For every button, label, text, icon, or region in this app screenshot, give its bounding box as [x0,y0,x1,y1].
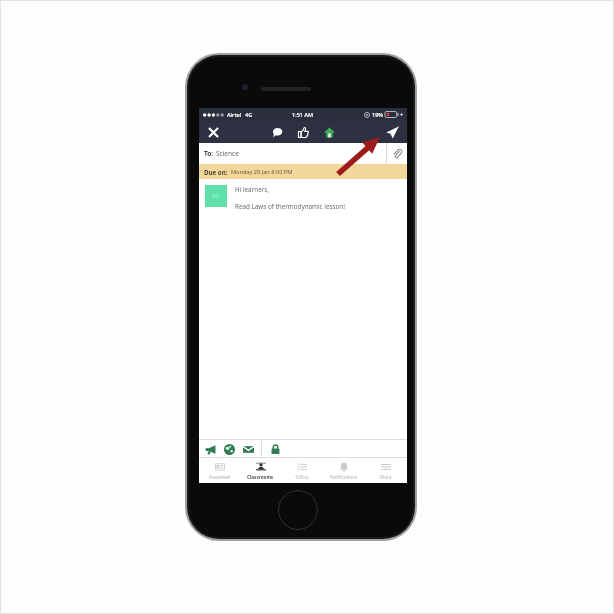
button[interactable]: Newsfeed [199,458,240,483]
staticText: Classrooms [247,474,274,480]
button[interactable]: Notifications [323,458,365,483]
button[interactable]: Send [383,123,401,141]
button[interactable]: Message [240,441,256,457]
staticText: Due on: [204,168,228,176]
staticText: Science [216,149,239,158]
button[interactable]: Close [205,124,221,140]
button[interactable]: Announce [202,441,218,457]
button[interactable]: Comments [269,124,286,141]
button[interactable]: To: [199,143,386,164]
button[interactable]: BS [205,185,227,207]
staticText: More [380,474,392,480]
button[interactable]: Home button [278,490,318,530]
staticText: Airtel [227,111,242,118]
button[interactable]: Public [221,441,237,457]
button[interactable]: Home [321,124,338,141]
button[interactable]: ToDos [281,458,323,483]
button[interactable]: Like [295,124,312,141]
staticText: Read Laws of thermodynamic lesson! [235,202,345,211]
staticText: Notifications [330,474,358,480]
staticText: 4G [245,111,253,118]
staticText: Newsfeed [209,474,231,480]
staticText: 1:51 AM [292,111,314,118]
staticText: To: [204,149,214,158]
staticText: BS [212,192,220,200]
staticText: Hi learners, [235,185,269,194]
staticText: Monday 29 Jan 8:00 PM [231,168,293,176]
staticText: ToDos [295,474,309,480]
staticText: + [400,111,404,118]
button[interactable]: More [365,458,407,483]
button[interactable]: Due on: [199,164,407,179]
button[interactable]: Classrooms [240,458,281,483]
button[interactable]: Private [267,441,283,457]
staticText: 19% [372,111,383,118]
button[interactable]: Attach file [387,143,407,164]
